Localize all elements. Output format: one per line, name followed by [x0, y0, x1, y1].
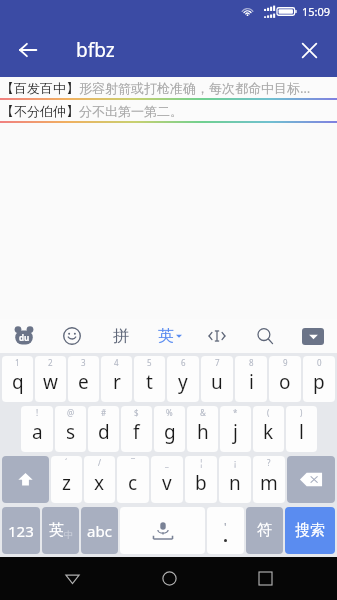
button[interactable]: 5 — [134, 356, 165, 402]
button[interactable]: 123 — [2, 507, 40, 554]
button[interactable]: Move cursor — [203, 322, 231, 350]
button[interactable]: @ — [55, 406, 86, 452]
button[interactable]: * — [220, 406, 251, 452]
button[interactable]: ? — [253, 456, 285, 503]
staticText: % — [166, 407, 173, 418]
button[interactable]: 1 — [2, 356, 33, 402]
staticText: ! — [36, 407, 39, 418]
staticText: ' — [224, 519, 227, 534]
staticText: 拼 — [113, 326, 129, 346]
staticText: q — [12, 369, 24, 395]
button[interactable]: 0 — [303, 356, 335, 402]
staticText: 3 — [81, 357, 86, 368]
staticText: 8 — [249, 357, 254, 368]
button[interactable]: Hide keyboard — [299, 322, 327, 350]
button[interactable]: ) — [286, 406, 317, 452]
staticText: ? — [267, 457, 271, 468]
button[interactable]: 6 — [167, 356, 199, 402]
staticText: 6 — [181, 357, 186, 368]
button[interactable]: 符 — [246, 507, 283, 554]
staticText: 123 — [8, 521, 34, 541]
staticText: bfbz — [76, 37, 115, 63]
staticText: l — [299, 419, 304, 445]
button[interactable]: abc — [81, 507, 118, 554]
button[interactable]: 搜索 — [285, 507, 335, 554]
staticText: $ — [134, 407, 139, 418]
button[interactable]: Punctuation — [207, 507, 244, 554]
button[interactable]: ¦ — [185, 456, 217, 503]
staticText: / — [98, 457, 101, 468]
button[interactable]: & — [187, 406, 218, 452]
button[interactable]: ¡ — [219, 456, 251, 503]
staticText: k — [263, 419, 274, 445]
button[interactable]: % — [154, 406, 185, 452]
button[interactable]: ( — [253, 406, 284, 452]
button[interactable]: ! — [21, 406, 53, 452]
button[interactable]: Space — [120, 507, 205, 554]
staticText: 0 — [317, 357, 322, 368]
staticText: o — [279, 369, 291, 395]
staticText: ) — [300, 407, 303, 418]
button[interactable]: Home — [145, 557, 193, 600]
staticText: a — [32, 419, 43, 445]
staticText: * — [233, 407, 238, 418]
staticText: 5 — [147, 357, 152, 368]
staticText: w — [43, 369, 58, 395]
button[interactable]: 英 — [156, 326, 184, 346]
staticText: 4 — [114, 357, 119, 368]
staticText: u — [211, 369, 223, 395]
staticText: ¦ — [199, 457, 204, 468]
button[interactable]: ¯ — [117, 456, 149, 503]
staticText: 【百发百中】 — [1, 80, 79, 96]
staticText: i — [249, 369, 254, 395]
staticText: h — [197, 419, 209, 445]
staticText: v — [162, 470, 172, 496]
staticText: 分不出第一第二。 — [79, 103, 183, 119]
staticText: 1 — [15, 357, 20, 368]
staticText: j — [233, 419, 238, 445]
button[interactable]: 4 — [101, 356, 132, 402]
button[interactable]: 7 — [201, 356, 233, 402]
button[interactable]: Close — [287, 28, 331, 72]
button[interactable]: # — [88, 406, 119, 452]
staticText: 7 — [215, 357, 220, 368]
staticText: t — [146, 369, 153, 395]
button[interactable]: 9 — [269, 356, 301, 402]
button[interactable]: Search — [251, 322, 279, 350]
staticText: ´ — [65, 457, 68, 468]
button[interactable]: Shift — [2, 456, 49, 503]
button[interactable]: Recents — [241, 557, 289, 600]
button[interactable]: Back — [48, 557, 96, 600]
button[interactable]: $ — [121, 406, 152, 452]
button[interactable]: 3 — [68, 356, 99, 402]
button[interactable]: 8 — [235, 356, 267, 402]
staticText: b — [195, 470, 207, 496]
button[interactable]: Backspace — [287, 456, 335, 503]
button[interactable]: / — [84, 456, 115, 503]
button[interactable]: Baidu input settings — [10, 322, 38, 350]
button[interactable]: _ — [151, 456, 183, 503]
button[interactable]: 2 — [35, 356, 66, 402]
staticText: abc — [87, 521, 112, 541]
staticText: 【不分伯仲】 — [1, 103, 79, 119]
staticText: s — [66, 419, 76, 445]
staticText: du — [19, 332, 30, 343]
staticText: ¯ — [131, 457, 135, 468]
staticText: f — [133, 419, 140, 445]
staticText: p — [313, 369, 325, 395]
button[interactable]: ´ — [51, 456, 82, 503]
staticText: 2 — [48, 357, 53, 368]
staticText: z — [62, 470, 71, 496]
staticText: 英 — [49, 521, 64, 540]
button[interactable]: 【百发百中】 — [0, 77, 337, 98]
staticText: m — [260, 470, 278, 496]
staticText: e — [78, 369, 89, 395]
staticText: g — [164, 419, 176, 445]
button[interactable]: Emoji — [58, 322, 86, 350]
button[interactable]: 英 — [42, 507, 79, 554]
button[interactable]: 拼 — [106, 321, 136, 351]
staticText: 15:09 — [302, 4, 331, 19]
button[interactable]: 【不分伯仲】 — [0, 100, 337, 121]
staticText: & — [200, 407, 206, 418]
button[interactable]: Back — [6, 28, 50, 72]
